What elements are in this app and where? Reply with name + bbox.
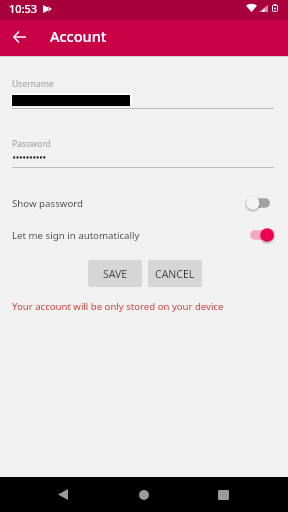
button[interactable]: Back <box>43 477 83 512</box>
staticText: Account <box>50 26 107 46</box>
staticText: 10:53 <box>9 1 38 16</box>
staticText: CANCEL <box>155 267 195 281</box>
button[interactable]: CANCEL <box>148 260 202 287</box>
staticText: Password <box>12 138 51 150</box>
button[interactable]: Show password <box>0 193 288 213</box>
button[interactable]: Let me sign in automatically <box>0 225 288 245</box>
staticText: Username <box>12 78 54 90</box>
button[interactable]: Recent apps <box>203 477 243 512</box>
button[interactable]: SAVE <box>88 260 142 287</box>
button[interactable]: Navigate up <box>4 21 35 52</box>
staticText: SAVE <box>103 267 128 281</box>
staticText: Your account will be only stored on your… <box>12 300 224 313</box>
staticText: Show password <box>12 197 84 210</box>
button[interactable]: Home <box>124 477 164 512</box>
staticText: Let me sign in automatically <box>12 229 140 242</box>
